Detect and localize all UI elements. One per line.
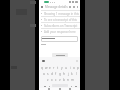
button[interactable]: u bbox=[64, 65, 68, 71]
staticText: w bbox=[45, 66, 48, 70]
button[interactable]: Enter bbox=[73, 84, 78, 88]
staticText: a bbox=[43, 72, 45, 76]
button[interactable]: a bbox=[42, 71, 46, 77]
button[interactable]: Symbols bbox=[42, 84, 47, 88]
button[interactable]: l bbox=[74, 71, 78, 77]
staticText: i bbox=[70, 66, 71, 70]
button[interactable]: f bbox=[54, 71, 58, 77]
button[interactable]: j bbox=[66, 71, 70, 77]
button[interactable]: b bbox=[62, 77, 66, 83]
staticText: j bbox=[68, 72, 69, 76]
staticText: d bbox=[51, 72, 53, 76]
staticText: z bbox=[47, 78, 49, 82]
button[interactable]: Period bbox=[69, 84, 73, 88]
staticText: g bbox=[59, 72, 61, 76]
staticText: p bbox=[77, 66, 79, 70]
staticText: n bbox=[67, 78, 69, 82]
staticText: k bbox=[71, 72, 73, 76]
staticText: x bbox=[51, 78, 53, 82]
button[interactable]: d bbox=[50, 71, 54, 77]
button[interactable]: k bbox=[70, 71, 74, 77]
staticText: Message details bbox=[45, 5, 68, 9]
staticText: e bbox=[49, 66, 51, 70]
button[interactable]: g bbox=[58, 71, 62, 77]
button[interactable]: p bbox=[76, 65, 80, 71]
button[interactable]: v bbox=[58, 77, 62, 83]
button[interactable]: z bbox=[46, 77, 50, 83]
button[interactable]: Showing 1 message in this convers bbox=[39, 11, 80, 16]
button[interactable]: x bbox=[50, 77, 54, 83]
staticText: Showing 1 message in this convers bbox=[44, 12, 80, 16]
staticText: h bbox=[63, 72, 65, 76]
staticText: r bbox=[53, 66, 55, 70]
staticText: c bbox=[55, 78, 57, 82]
staticText: y bbox=[61, 66, 63, 70]
button[interactable]: Add your response here bbox=[39, 29, 80, 34]
button[interactable]: Emoji suggestion bbox=[42, 60, 45, 62]
staticText: Subscribers on Transcript v1.0 bbox=[44, 24, 80, 28]
button[interactable]: e bbox=[48, 65, 52, 71]
button[interactable]: w bbox=[44, 65, 48, 71]
button[interactable]: To see a transcript of this meeting bbox=[39, 17, 80, 22]
staticText: t bbox=[57, 66, 59, 70]
button[interactable]: m bbox=[70, 77, 74, 83]
staticText: b bbox=[63, 78, 65, 82]
button[interactable]: r bbox=[52, 65, 56, 71]
staticText: f bbox=[55, 72, 57, 76]
staticText: Add your response here bbox=[44, 30, 76, 34]
button[interactable]: h bbox=[62, 71, 66, 77]
staticText: v bbox=[59, 78, 61, 82]
button[interactable] bbox=[41, 36, 78, 42]
button[interactable]: t bbox=[56, 65, 60, 71]
button[interactable]: y bbox=[60, 65, 64, 71]
staticText: o bbox=[73, 66, 75, 70]
button[interactable]: Emoji bbox=[47, 84, 51, 88]
button[interactable]: n bbox=[66, 77, 70, 83]
staticText: s bbox=[47, 72, 49, 76]
staticText: u bbox=[65, 66, 67, 70]
staticText: To see a transcript of this meeting bbox=[44, 18, 80, 22]
staticText: m bbox=[71, 78, 74, 82]
button[interactable]: i bbox=[68, 65, 72, 71]
button[interactable]: q bbox=[39, 65, 44, 71]
button[interactable]: o bbox=[72, 65, 76, 71]
staticText: l bbox=[76, 72, 77, 76]
staticText: q bbox=[41, 66, 43, 70]
button[interactable] bbox=[52, 53, 68, 57]
button[interactable]: s bbox=[46, 71, 50, 77]
button[interactable]: Subscribers on Transcript v1.0 bbox=[39, 23, 80, 28]
button[interactable]: c bbox=[54, 77, 58, 83]
